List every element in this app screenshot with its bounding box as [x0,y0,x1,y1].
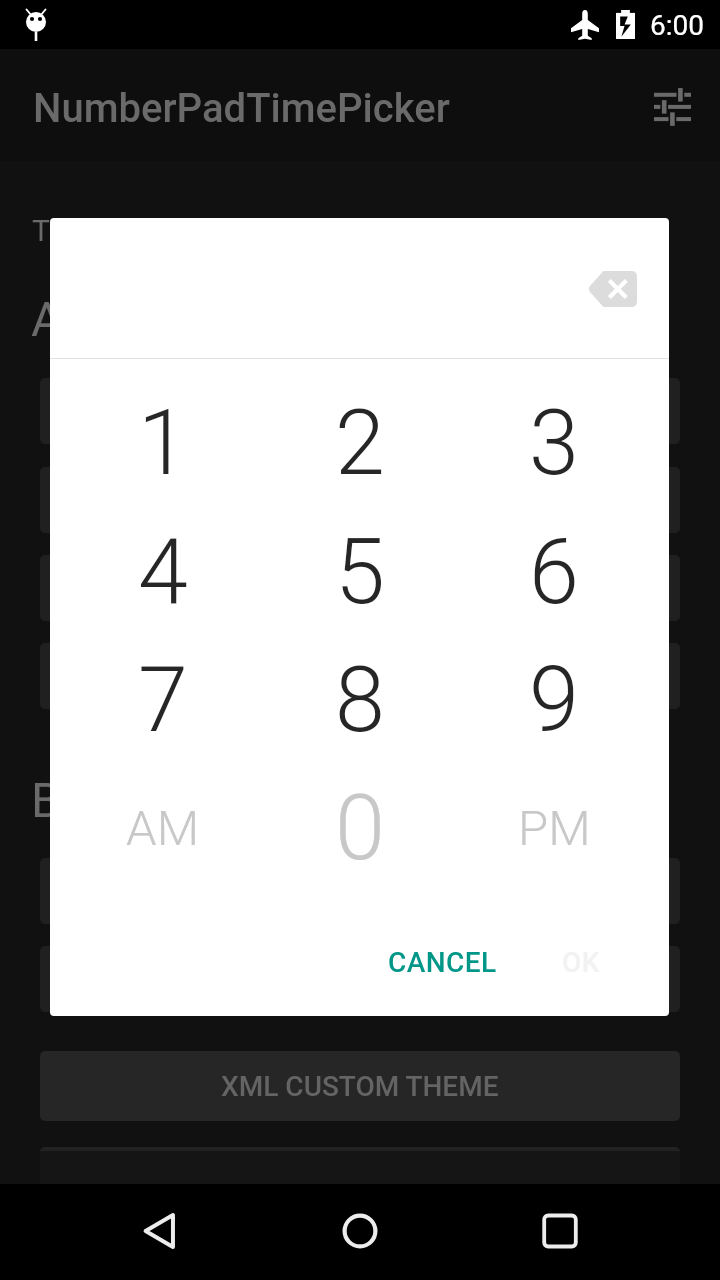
staticText: AM [126,800,200,857]
button[interactable]: 7 [67,637,259,763]
button[interactable]: 4 [67,509,259,635]
button[interactable]: 0 [264,765,456,891]
button[interactable]: Recents [524,1195,596,1267]
staticText: 1 [138,391,188,496]
button[interactable]: 8 [264,637,456,763]
button[interactable]: LIGHT WITH DARK ACTIONBAR [40,555,680,621]
staticText: 6 [529,520,579,625]
button[interactable]: XML CUSTOM THEME [40,1051,680,1121]
button[interactable]: Home [324,1195,396,1267]
button[interactable]: MATERIAL DARK [40,946,680,1012]
button[interactable]: DAYNIGHT [40,643,680,709]
staticText: 4 [138,520,188,625]
staticText: 3 [529,391,579,496]
button[interactable]: MATERIAL LIGHT [40,858,680,924]
button[interactable]: 6 [458,509,650,635]
button[interactable]: PM [458,765,650,891]
button[interactable]: Back [124,1195,196,1267]
staticText: CANCEL [388,946,497,979]
staticText: 7 [138,648,188,753]
button[interactable]: AM [67,765,259,891]
button[interactable]: CANCEL [362,928,522,996]
staticText: AppCompat [31,291,286,347]
staticText: PM [518,800,591,857]
button[interactable]: 1 [67,380,259,506]
button[interactable]: Backspace [577,259,649,319]
staticText: LIGHT WITH DARK ACTIONBAR [163,572,557,605]
staticText: 6:00 [650,9,704,42]
button[interactable]: 2 [264,380,456,506]
button[interactable]: 3 [458,380,650,506]
button[interactable]: 5 [264,509,456,635]
button[interactable]: 9 [458,637,650,763]
staticText: NumberPadTimePicker [33,85,450,132]
button[interactable]: DEFAULT (LIGHT) [40,378,680,444]
staticText: DAYNIGHT [292,660,428,693]
staticText: 5 [335,520,385,625]
staticText: MATERIAL DARK [254,963,467,996]
staticText: Theme [32,213,125,248]
staticText: 2 [335,391,385,496]
staticText: XML CUSTOM THEME [221,1070,499,1103]
button[interactable]: DARK [40,467,680,533]
staticText: 0 [335,776,385,881]
staticText: DEFAULT (LIGHT) [251,395,469,428]
staticText: OK [562,946,600,979]
staticText: Base [31,772,138,828]
staticText: 9 [529,648,579,753]
staticText: 8 [335,648,385,753]
button[interactable]: Settings [644,79,700,135]
button[interactable] [40,1147,680,1187]
